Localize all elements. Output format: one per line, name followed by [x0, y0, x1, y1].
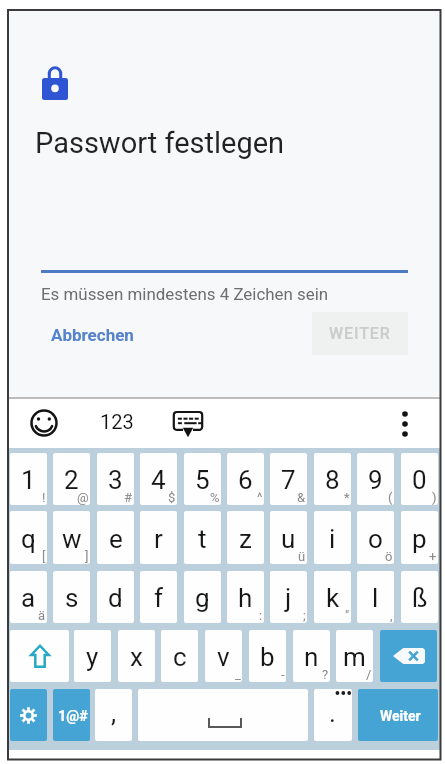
staticText: % [210, 490, 220, 505]
button[interactable]: Weiter [358, 689, 438, 741]
button[interactable]: 5 [184, 453, 221, 505]
button[interactable]: z [227, 511, 264, 564]
button[interactable]: y [74, 630, 111, 682]
staticText: i [329, 524, 336, 554]
staticText: 1 [21, 465, 36, 495]
button[interactable]: l [357, 571, 394, 623]
staticText: e [109, 524, 123, 554]
button[interactable]: t [184, 511, 221, 564]
button[interactable]: 1 [10, 453, 47, 505]
button[interactable]: c [161, 630, 198, 682]
staticText: ( [388, 490, 393, 505]
staticText: w [62, 524, 82, 554]
staticText: x [130, 642, 143, 672]
button[interactable]: n [293, 630, 330, 682]
staticText: p [412, 524, 427, 554]
button[interactable]: ß [401, 571, 438, 623]
button[interactable]: s [53, 571, 90, 623]
staticText: u [281, 524, 296, 554]
button[interactable]: u [270, 511, 307, 564]
staticText: ä [38, 608, 46, 623]
button[interactable]: Backspace [380, 630, 437, 682]
staticText: $ [168, 490, 176, 505]
staticText: , [111, 698, 117, 728]
staticText: " [345, 608, 350, 623]
staticText: s [65, 583, 79, 613]
button[interactable]: 123 [86, 401, 148, 441]
button[interactable]: r [140, 511, 177, 564]
button[interactable]: j [270, 571, 307, 623]
button[interactable]: 3 [97, 453, 134, 505]
button[interactable]: Shift [10, 630, 69, 682]
staticText: m [343, 642, 366, 672]
button[interactable]: a [10, 571, 47, 623]
staticText: k [326, 583, 340, 613]
staticText: : [259, 608, 263, 623]
button[interactable]: Abbrechen [43, 313, 142, 357]
staticText: [ [42, 549, 46, 564]
staticText: Passwort festlegen [35, 126, 285, 160]
staticText: q [21, 524, 36, 554]
staticText: + [429, 549, 437, 564]
button[interactable]: More options [387, 404, 423, 444]
staticText: 3 [108, 465, 123, 495]
button[interactable]: x [118, 630, 155, 682]
button[interactable]: v [205, 630, 242, 682]
staticText: b [260, 642, 275, 672]
button[interactable]: f [140, 571, 177, 623]
staticText: 6 [238, 465, 253, 495]
button[interactable]: 9 [357, 453, 394, 505]
staticText: 8 [325, 465, 340, 495]
button[interactable]: m [336, 630, 373, 682]
button[interactable]: i [314, 511, 351, 564]
staticText: ? [322, 667, 329, 682]
staticText: g [195, 583, 210, 613]
button[interactable]: q [10, 511, 47, 564]
staticText: 1@# [58, 708, 88, 725]
button[interactable]: 6 [227, 453, 264, 505]
staticText: z [239, 524, 252, 554]
button[interactable]: 7 [270, 453, 307, 505]
button[interactable]: 8 [314, 453, 351, 505]
staticText: ) [432, 490, 437, 505]
button[interactable]: WEITER [312, 312, 408, 355]
staticText: 9 [368, 465, 383, 495]
staticText: 7 [281, 465, 296, 495]
button[interactable]: Settings [10, 689, 47, 741]
button[interactable]: h [227, 571, 264, 623]
button[interactable]: Emoji [24, 403, 64, 443]
button[interactable]: e [97, 511, 134, 564]
staticText: d [108, 583, 123, 613]
button[interactable]: p [401, 511, 438, 564]
button[interactable]: . [314, 689, 352, 741]
staticText: ^ [257, 490, 263, 505]
staticText: - [281, 667, 285, 682]
staticText: ö [385, 549, 393, 564]
staticText: l [372, 583, 379, 613]
button[interactable]: b [249, 630, 286, 682]
button[interactable]: Space [138, 689, 308, 741]
staticText: Weiter [380, 708, 421, 724]
staticText: @ [77, 490, 89, 505]
button[interactable]: Hide keyboard [170, 409, 206, 441]
staticText: j [285, 583, 292, 613]
staticText: n [304, 642, 319, 672]
staticText: c [173, 642, 187, 672]
staticText: o [368, 524, 383, 554]
button[interactable]: 2 [53, 453, 90, 505]
button[interactable]: w [53, 511, 90, 564]
button[interactable]: , [95, 689, 132, 741]
staticText: . [329, 698, 336, 728]
button[interactable]: Symbols [53, 689, 90, 741]
button[interactable]: g [184, 571, 221, 623]
button[interactable]: o [357, 511, 394, 564]
button[interactable]: k [314, 571, 351, 623]
button[interactable]: 0 [401, 453, 438, 505]
staticText: Abbrechen [51, 325, 134, 345]
staticText: f [154, 583, 164, 613]
staticText: / [366, 667, 372, 682]
button[interactable]: 4 [140, 453, 177, 505]
staticText: Es müssen mindestens 4 Zeichen sein [41, 284, 329, 304]
button[interactable]: d [97, 571, 134, 623]
staticText: 4 [151, 465, 166, 495]
